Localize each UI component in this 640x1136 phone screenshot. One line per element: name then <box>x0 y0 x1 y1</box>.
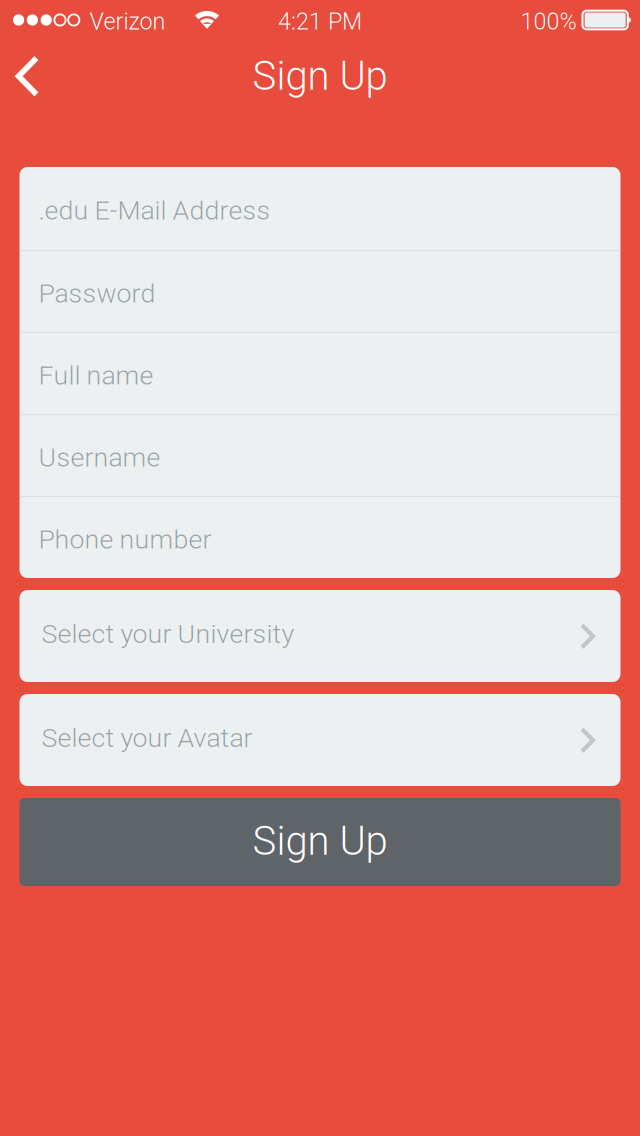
button[interactable]: .edu E-Mail Address <box>19 167 620 250</box>
staticText: Select your University <box>41 618 294 650</box>
staticText: Sign Up <box>252 53 387 99</box>
staticText: 100% <box>520 8 576 35</box>
button[interactable]: Phone number <box>19 497 620 578</box>
staticText: Phone number <box>38 524 211 555</box>
staticText: .edu E-Mail Address <box>38 195 270 226</box>
button[interactable]: Full name <box>19 333 620 414</box>
staticText: Verizon <box>89 8 165 35</box>
button[interactable]: Select your Avatar <box>19 694 620 786</box>
staticText: Username <box>38 442 160 473</box>
staticText: Sign Up <box>252 818 387 864</box>
staticText: Select your Avatar <box>41 722 252 754</box>
button[interactable]: Username <box>19 415 620 496</box>
staticText: Password <box>38 278 155 309</box>
button[interactable]: Password <box>19 251 620 332</box>
button[interactable]: Sign Up <box>19 798 620 886</box>
button[interactable]: Back <box>0 40 86 128</box>
staticText: Full name <box>38 360 153 391</box>
button[interactable]: Select your University <box>19 590 620 682</box>
staticText: 4:21 PM <box>278 8 362 35</box>
